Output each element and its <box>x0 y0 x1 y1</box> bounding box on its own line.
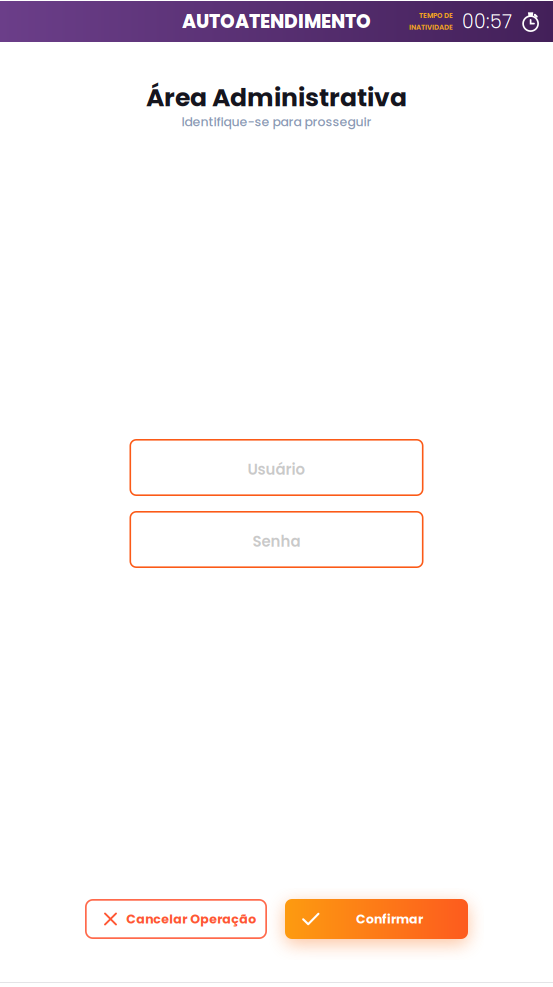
button[interactable]: Confirmar <box>285 899 468 939</box>
staticText: 00:57 <box>462 8 512 35</box>
staticText: Senha <box>252 531 300 552</box>
staticText: AUTOATENDIMENTO <box>182 8 371 34</box>
staticText: Cancelar Operação <box>126 910 256 928</box>
staticText: Área Administrativa <box>146 80 407 115</box>
button[interactable]: Usuário <box>129 439 423 496</box>
staticText: Confirmar <box>356 910 423 928</box>
staticText: Usuário <box>247 459 305 480</box>
staticText: INATIVIDADE <box>409 22 453 32</box>
button[interactable]: Cancelar Operação <box>85 899 267 939</box>
button[interactable]: Senha <box>129 511 423 568</box>
staticText: Identifique-se para prosseguir <box>181 113 371 131</box>
staticText: TEMPO DE <box>419 11 453 20</box>
